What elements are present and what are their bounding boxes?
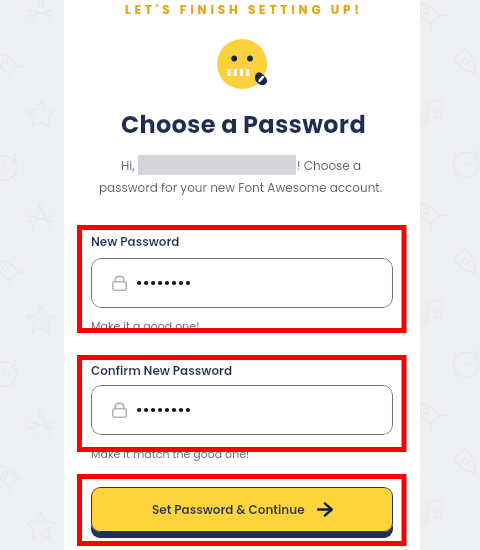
staticText: password for your new Font Awesome accou… [99, 179, 383, 196]
button[interactable]: Confirm New Password [91, 385, 393, 435]
button[interactable]: Set Password & Continue [91, 487, 393, 532]
staticText: Choose a Password [121, 108, 366, 142]
other: Continue [316, 503, 333, 516]
staticText: ! Choose a [297, 157, 362, 174]
staticText: Set Password & Continue [152, 501, 305, 518]
staticText: Make it match the good one! [91, 446, 250, 461]
button[interactable]: New Password [91, 258, 393, 308]
staticText: Hi, [121, 157, 135, 174]
staticText: Confirm New Password [91, 362, 233, 379]
staticText: Make it a good one! [91, 318, 200, 333]
staticText: New Password [91, 233, 180, 250]
staticText: LET'S FINISH SETTING UP! [125, 1, 363, 18]
